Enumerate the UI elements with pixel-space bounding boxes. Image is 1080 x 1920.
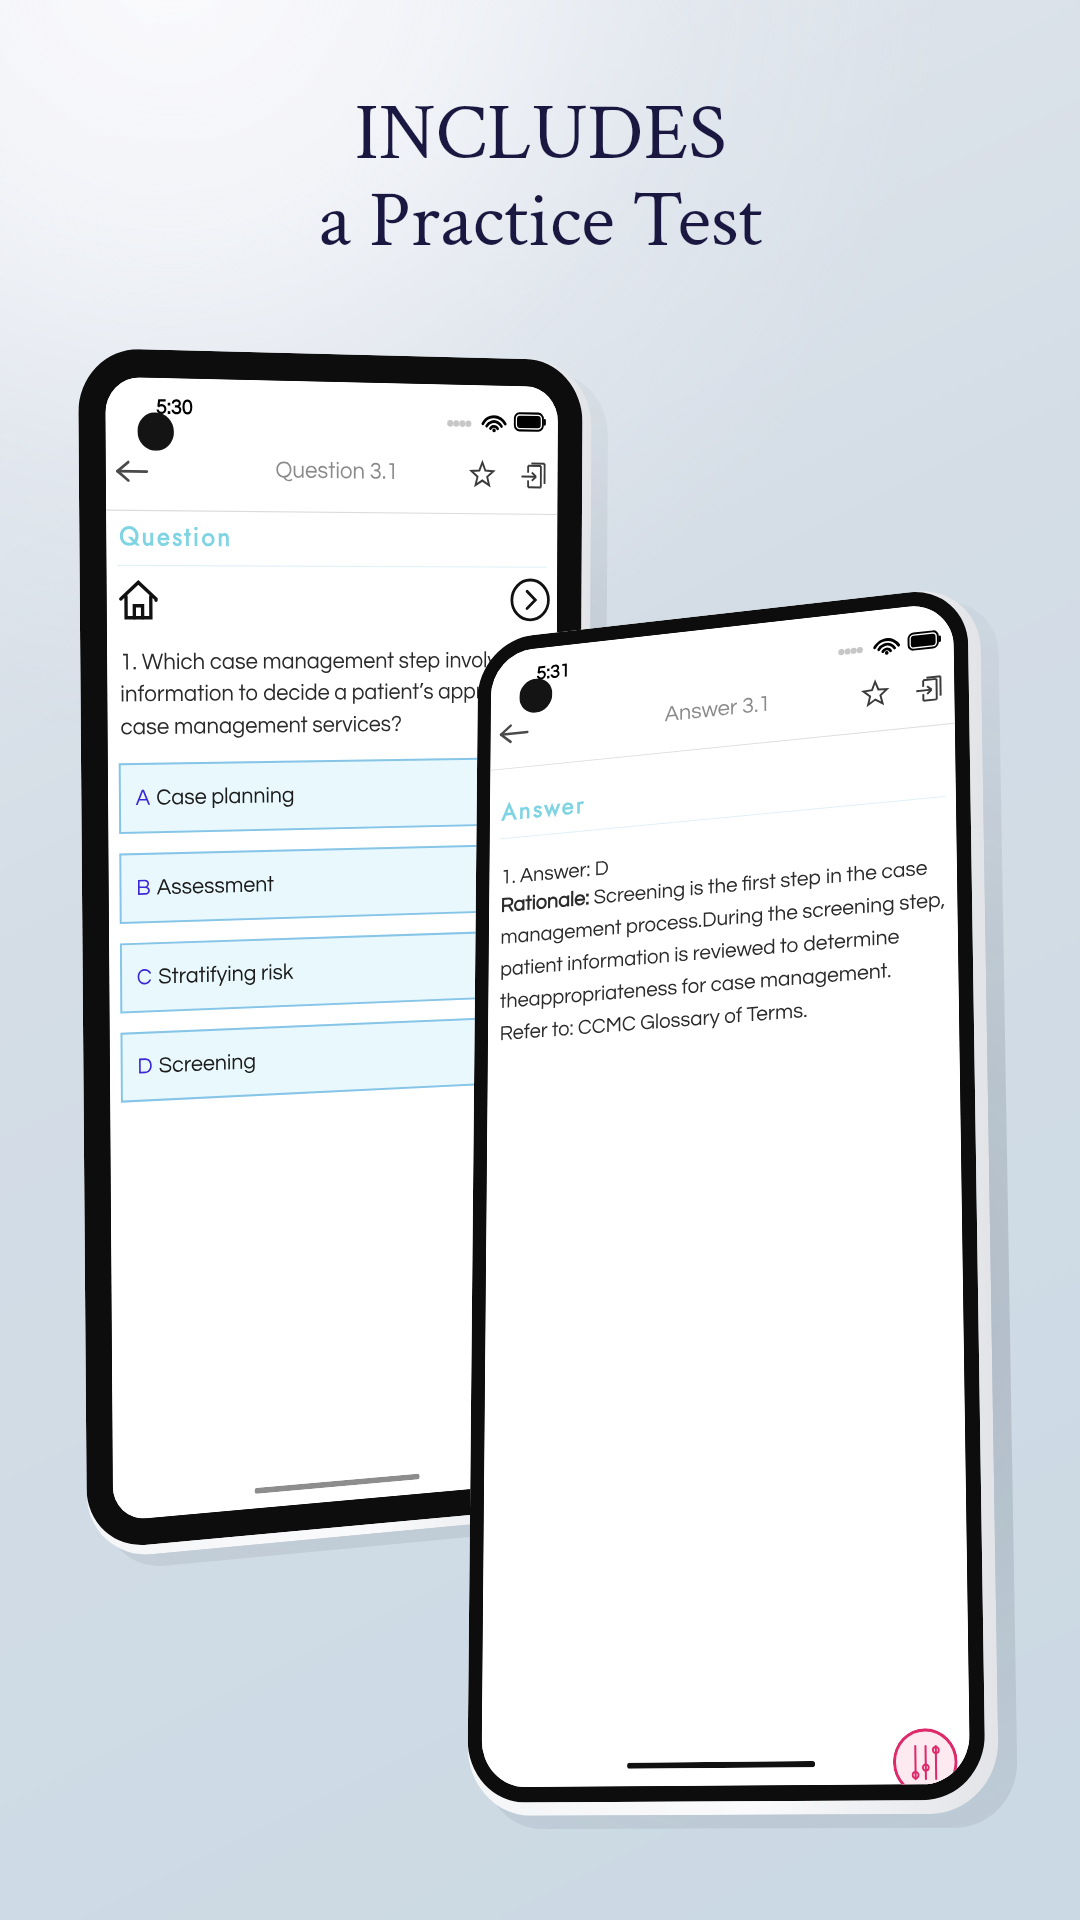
button[interactable]: Next (509, 576, 552, 623)
button[interactable]: Open (907, 665, 951, 712)
staticText: Screening (159, 1050, 256, 1078)
staticText: A (136, 786, 150, 810)
button[interactable]: Favourite (461, 451, 503, 497)
button[interactable]: Back (108, 446, 155, 495)
button[interactable]: B (119, 843, 546, 924)
staticText: 5:30 (156, 396, 194, 418)
button[interactable]: A (119, 757, 546, 834)
staticText: Rationale: Screening is the first step i… (500, 855, 947, 1045)
staticText: INCLUDES (354, 82, 727, 186)
staticText: B (136, 876, 151, 900)
staticText: Stratifying risk (158, 961, 294, 989)
staticText: Assessment (157, 873, 275, 899)
staticText: 1. Answer: D (501, 857, 610, 889)
staticText: a Practice Test (318, 170, 763, 273)
staticText: 5:31 (536, 660, 570, 683)
staticText: Question (119, 517, 233, 556)
staticText: Question 3.1 (275, 458, 398, 484)
button[interactable]: C (120, 929, 546, 1014)
button[interactable]: Back (492, 709, 534, 757)
staticText: Case planning (156, 784, 295, 810)
staticText: D (137, 1055, 153, 1079)
staticText: Answer 3.1 (665, 692, 771, 726)
button[interactable]: Favourite (854, 670, 897, 718)
button[interactable]: Home (114, 575, 161, 624)
staticText: Answer (501, 787, 586, 830)
button[interactable]: Settings (893, 1728, 958, 1784)
staticText: 1. Which case management step involves r… (120, 648, 557, 739)
button[interactable]: Open (513, 452, 554, 498)
staticText: C (137, 966, 152, 990)
button[interactable]: D (120, 1015, 545, 1103)
